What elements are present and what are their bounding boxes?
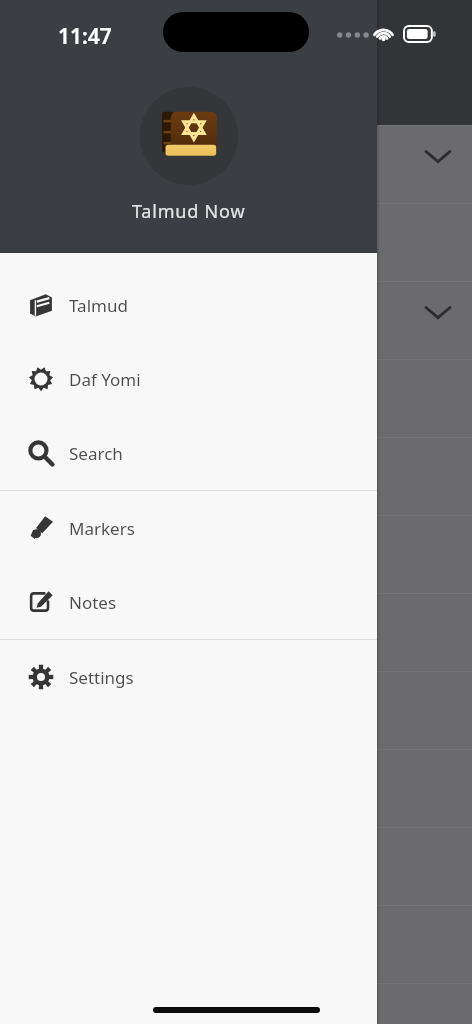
other: App icon <box>140 87 238 185</box>
staticText: Notes <box>69 591 117 614</box>
staticText: Search <box>69 442 123 465</box>
staticText: Settings <box>69 666 134 689</box>
button[interactable]: Markers <box>0 491 377 565</box>
staticText: Talmud Now <box>132 199 246 224</box>
staticText: Daf Yomi <box>69 368 141 391</box>
button[interactable]: Talmud <box>0 268 377 342</box>
staticText: 11:47 <box>58 22 112 51</box>
button[interactable]: Daf Yomi <box>0 342 377 416</box>
button[interactable]: Notes <box>0 565 377 639</box>
button[interactable]: Settings <box>0 640 377 714</box>
staticText: Talmud <box>69 294 128 317</box>
staticText: Markers <box>69 517 135 540</box>
button[interactable]: Search <box>0 416 377 490</box>
